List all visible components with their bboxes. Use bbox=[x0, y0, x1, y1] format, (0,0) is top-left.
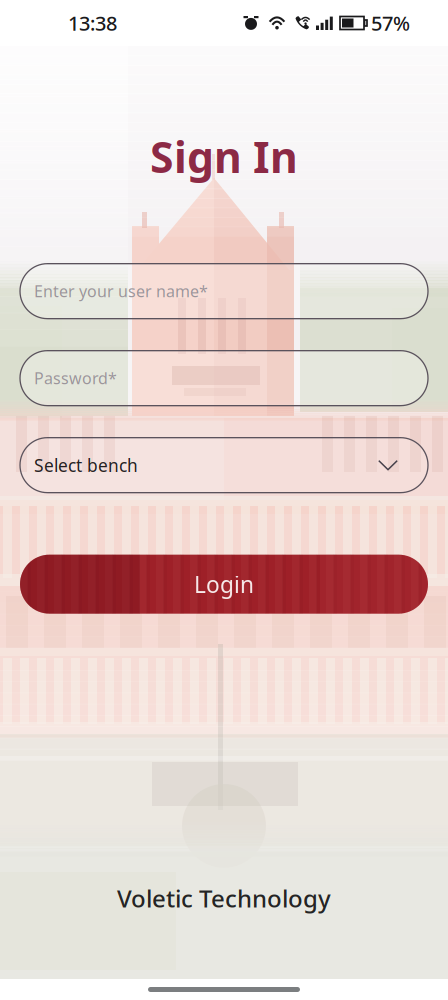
button[interactable]: Password* bbox=[20, 351, 428, 406]
staticText: Voletic Technology bbox=[117, 882, 331, 914]
button[interactable]: Login bbox=[20, 555, 428, 614]
staticText: Login bbox=[194, 569, 254, 599]
staticText: 57% bbox=[371, 10, 410, 36]
button[interactable]: Enter your user name* bbox=[20, 264, 428, 319]
staticText: Select bench bbox=[34, 454, 138, 477]
staticText: 13:38 bbox=[68, 10, 117, 36]
button[interactable]: Select bench bbox=[20, 438, 428, 493]
staticText: Password* bbox=[34, 367, 117, 389]
staticText: Sign In bbox=[150, 128, 298, 185]
staticText: Enter your user name* bbox=[34, 280, 208, 302]
